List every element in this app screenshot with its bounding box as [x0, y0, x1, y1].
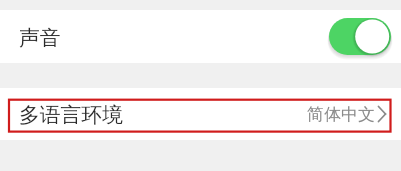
- staticText: 多语言环境: [19, 102, 123, 128]
- button[interactable]: Sound on: [329, 15, 391, 59]
- staticText: 声音: [19, 25, 61, 51]
- button[interactable]: 多语言环境: [0, 88, 401, 140]
- button[interactable]: 声音: [0, 10, 401, 63]
- staticText: 简体中文: [307, 104, 375, 125]
